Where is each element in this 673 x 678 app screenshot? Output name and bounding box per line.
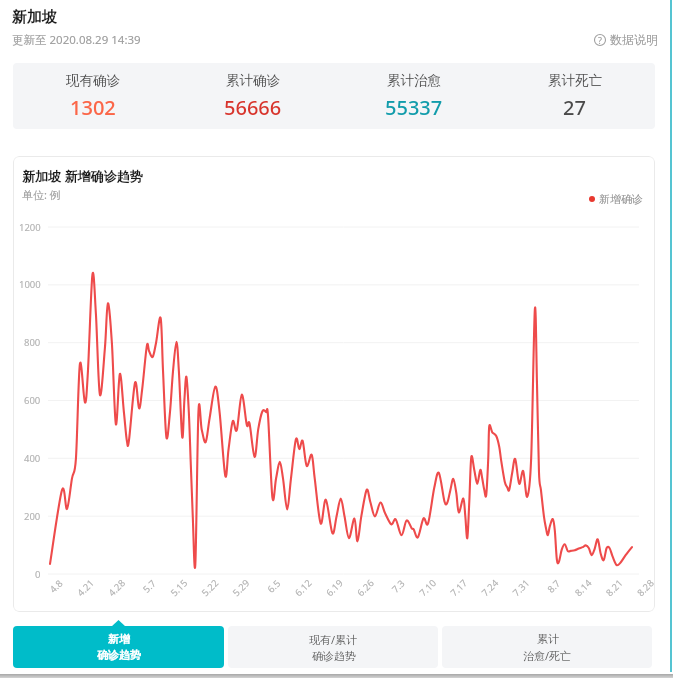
staticText: 累计确诊 xyxy=(226,72,280,89)
staticText: ? xyxy=(598,34,602,46)
staticText: 确诊趋势 xyxy=(312,649,356,663)
staticText: 新增确诊 xyxy=(599,192,643,206)
staticText: 56666 xyxy=(224,94,282,121)
staticText: 1302 xyxy=(70,94,116,121)
staticText: 55337 xyxy=(385,94,443,121)
staticText: 新增 xyxy=(108,632,130,646)
staticText: 现有确诊 xyxy=(66,72,120,89)
staticText: 累计治愈 xyxy=(387,72,441,89)
staticText: 累计 xyxy=(537,632,559,646)
button[interactable]: 累计 xyxy=(442,626,652,668)
staticText: 单位: 例 xyxy=(22,187,61,202)
button[interactable]: 数据说明 xyxy=(594,32,658,47)
button[interactable]: 累计治愈 xyxy=(333,63,494,129)
button[interactable]: 现有/累计 xyxy=(228,626,438,668)
staticText: 数据说明 xyxy=(610,32,658,47)
button[interactable]: 累计死亡 xyxy=(494,63,655,129)
staticText: 27 xyxy=(563,94,586,121)
button[interactable]: 现有确诊 xyxy=(13,63,173,129)
button[interactable]: 新增 xyxy=(13,626,224,668)
button[interactable]: 累计确诊 xyxy=(173,63,333,129)
staticText: 累计死亡 xyxy=(548,72,602,89)
staticText: 治愈/死亡 xyxy=(523,648,572,663)
staticText: 更新至 2020.08.29 14:39 xyxy=(12,32,141,48)
other: 数据说明 xyxy=(594,34,606,46)
staticText: 新加坡 新增确诊趋势 xyxy=(22,167,143,185)
staticText: 新加坡 xyxy=(12,8,57,27)
staticText: 确诊趋势 xyxy=(97,648,141,662)
staticText: 现有/累计 xyxy=(309,632,358,647)
